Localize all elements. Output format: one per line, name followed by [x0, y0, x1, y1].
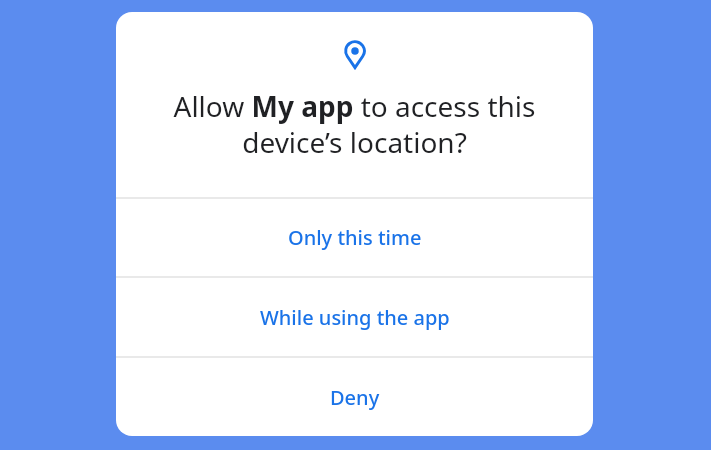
staticText: Only this time — [288, 224, 422, 251]
button[interactable]: Only this time — [116, 199, 593, 276]
staticText: Allow My app to access this device’s loc… — [116, 87, 593, 161]
staticText: Deny — [330, 384, 380, 411]
button[interactable]: Deny — [116, 358, 593, 436]
staticText: While using the app — [260, 304, 450, 331]
button[interactable]: While using the app — [116, 278, 593, 356]
